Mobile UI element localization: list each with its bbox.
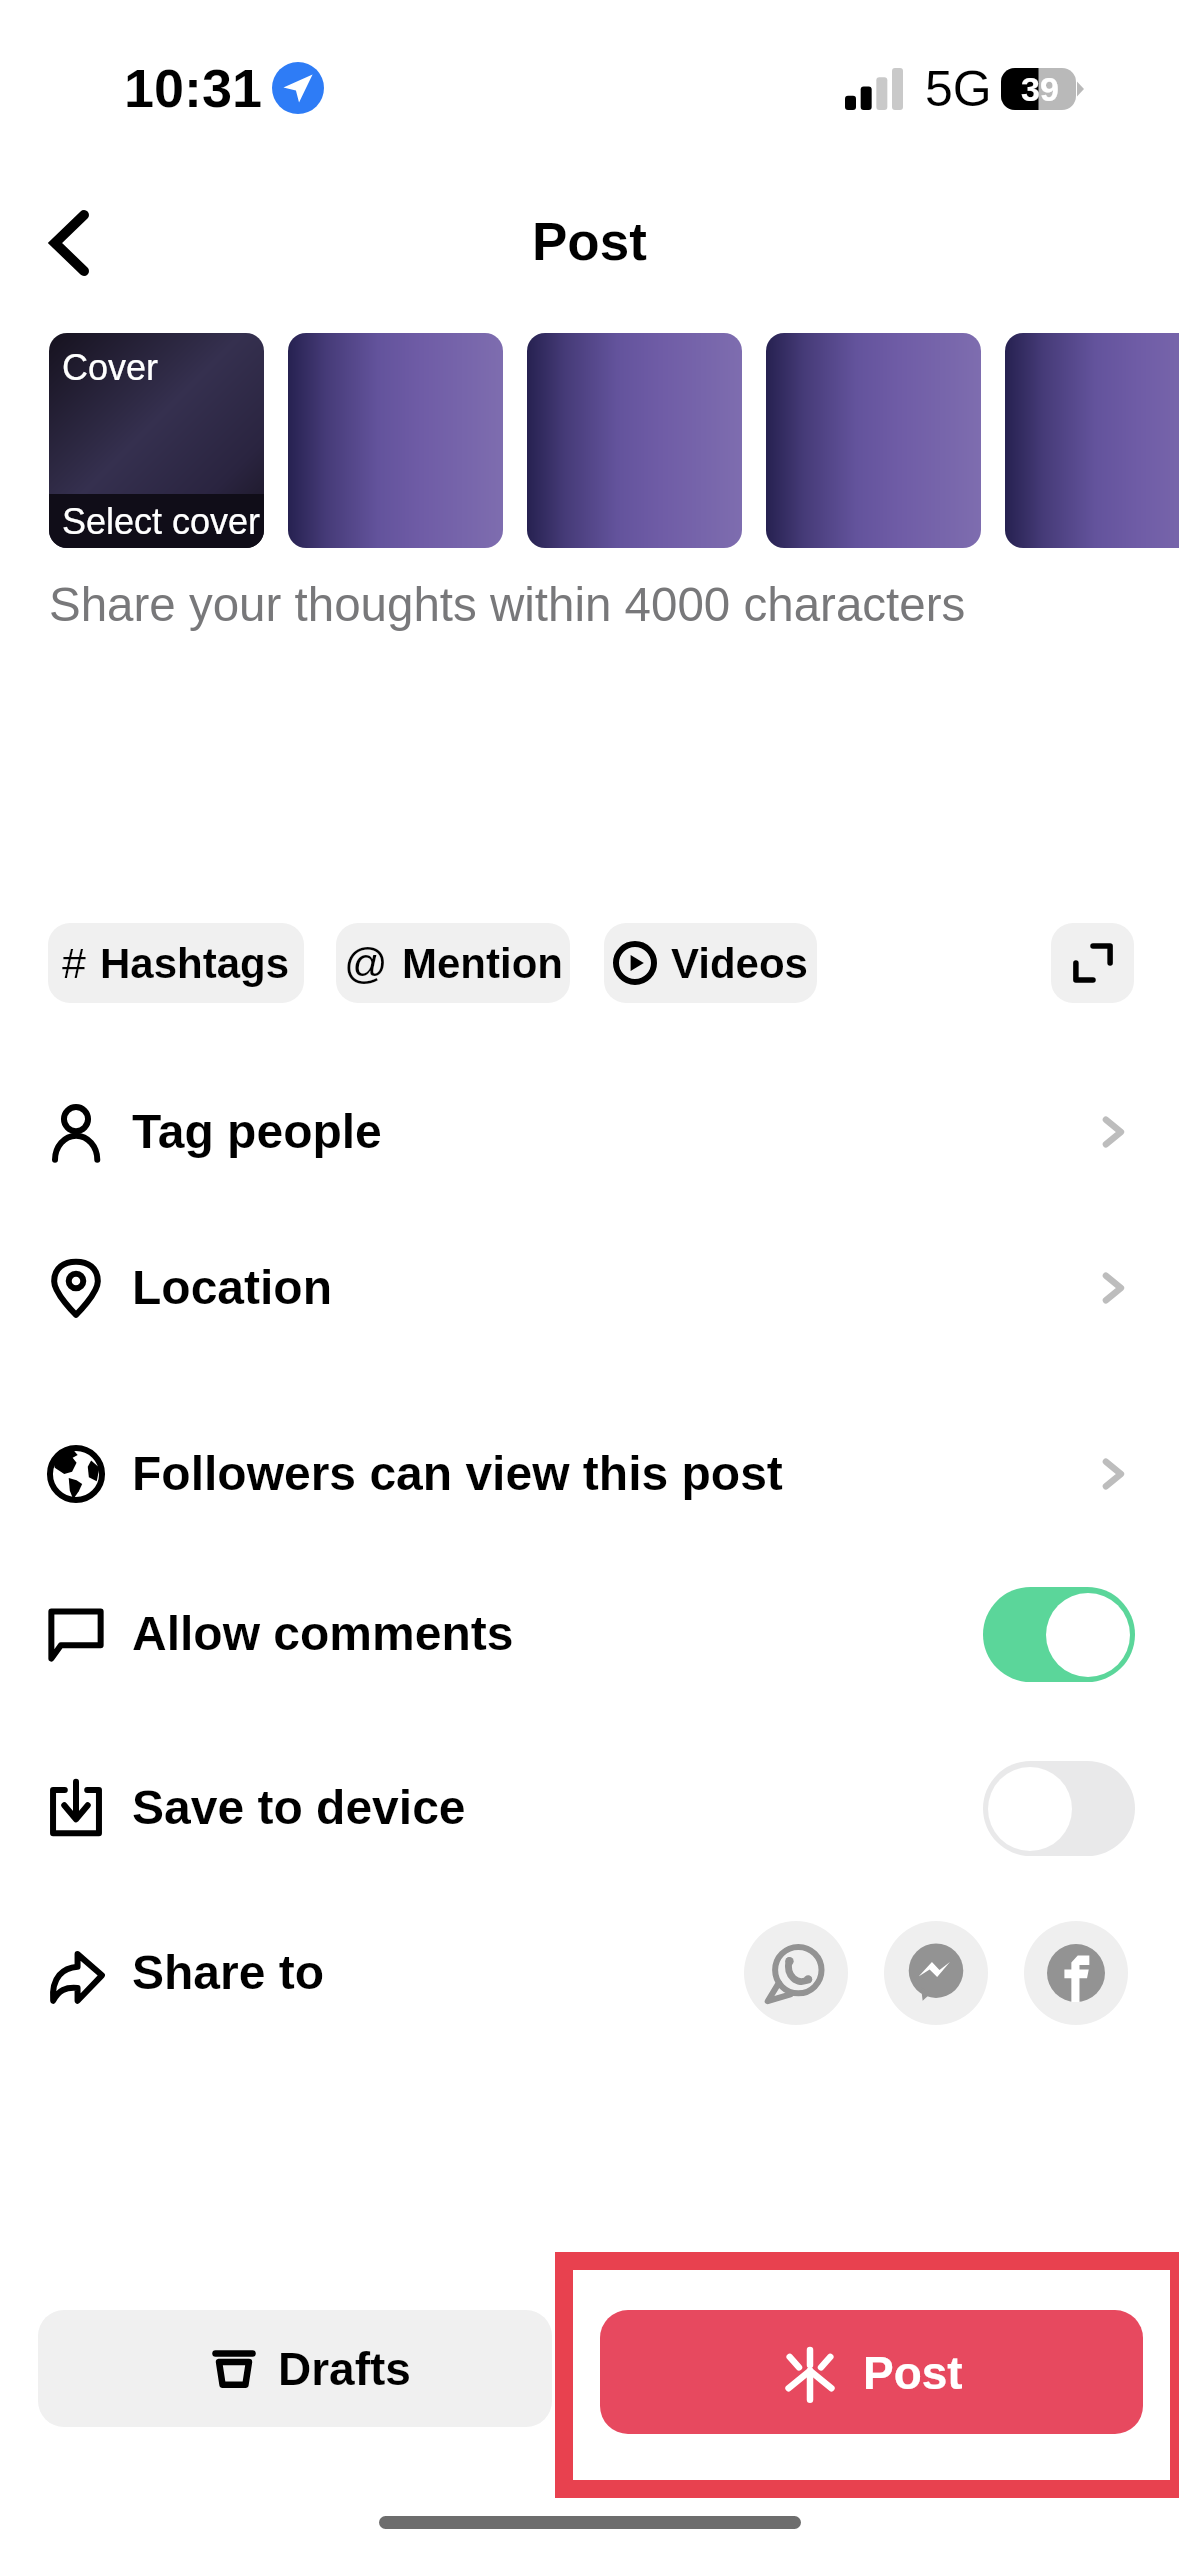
button[interactable]: Post xyxy=(600,2310,1143,2434)
button[interactable]: Video frame 3 xyxy=(766,333,981,548)
staticText: Post xyxy=(863,2347,963,2398)
button[interactable]: Share to Messenger xyxy=(884,1921,988,2025)
button[interactable]: @ xyxy=(336,923,570,1003)
staticText: 5G xyxy=(925,61,992,117)
staticText: Location xyxy=(132,1261,332,1315)
button[interactable]: Video frame 1 xyxy=(288,333,503,548)
staticText: 10:31 xyxy=(124,58,263,118)
button[interactable]: Switch on xyxy=(983,1587,1135,1682)
staticText: Followers can view this post xyxy=(132,1447,783,1501)
staticText: Mention xyxy=(402,940,563,987)
button[interactable]: Share to WhatsApp xyxy=(744,1921,848,2025)
staticText: Share your thoughts within 4000 characte… xyxy=(49,578,966,631)
staticText: Cover xyxy=(62,347,159,387)
staticText: Post xyxy=(532,212,647,271)
button[interactable]: Allow comments xyxy=(0,1578,1179,1690)
button[interactable]: Expand editor xyxy=(1051,923,1134,1003)
button[interactable]: Followers can view this post xyxy=(0,1418,1179,1530)
staticText: 39 xyxy=(1021,70,1059,108)
button[interactable]: Save to device xyxy=(0,1752,1179,1864)
button[interactable]: Share to Facebook xyxy=(1024,1921,1128,2025)
staticText: # xyxy=(62,939,86,987)
button[interactable]: Location xyxy=(0,1232,1179,1344)
staticText: Select cover xyxy=(62,501,261,541)
button[interactable]: Share to xyxy=(0,1917,1179,2029)
button[interactable]: Switch off xyxy=(983,1761,1135,1856)
staticText: Share to xyxy=(132,1946,325,2000)
button[interactable]: Videos xyxy=(604,923,817,1003)
button[interactable]: Back xyxy=(22,196,116,290)
button[interactable]: Video frame 4 xyxy=(1005,333,1179,548)
button[interactable]: Video frame 2 xyxy=(527,333,742,548)
button[interactable]: Cover xyxy=(49,333,264,548)
staticText: Tag people xyxy=(132,1105,382,1159)
staticText: Hashtags xyxy=(100,940,290,987)
staticText: Save to device xyxy=(132,1781,466,1835)
staticText: Videos xyxy=(671,940,808,987)
button[interactable]: Drafts xyxy=(38,2310,552,2427)
staticText: Allow comments xyxy=(132,1607,514,1661)
button[interactable]: Tag people xyxy=(0,1076,1179,1188)
button[interactable]: # xyxy=(48,923,304,1003)
staticText: Drafts xyxy=(278,2343,411,2394)
staticText: @ xyxy=(344,939,388,987)
